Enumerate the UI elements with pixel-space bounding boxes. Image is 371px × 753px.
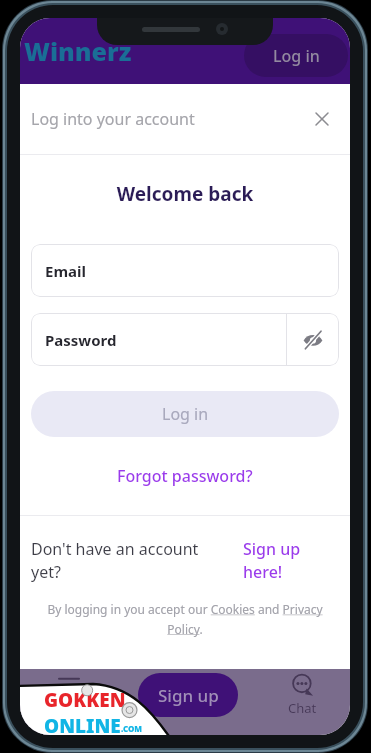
button[interactable]: Sign up [138,673,238,717]
staticText: GOKKEN [44,687,126,713]
button[interactable]: Email [31,244,339,297]
staticText: Chat [288,699,317,717]
button[interactable]: Show password [287,313,339,366]
button[interactable]: Log in [31,391,339,437]
button[interactable]: Forgot password? [20,456,350,496]
staticText: Email [45,261,86,281]
staticText: .COM [121,723,143,734]
staticText: Menu [51,696,87,714]
staticText: Winnerz [24,34,132,68]
staticText: Sign up here! [243,538,339,583]
staticText: Password [45,330,117,350]
staticText: Log into your account [31,108,195,130]
staticText: By logging in you accept our Cookies and… [44,601,326,637]
button[interactable]: Close [306,103,338,135]
button[interactable]: Password [31,313,339,366]
button[interactable]: Chat [273,674,331,735]
staticText: Forgot password? [117,465,253,487]
button[interactable]: Sign up here! [243,538,339,583]
button[interactable]: Log in [244,34,348,77]
staticText: Log in [162,403,209,425]
staticText: Sign up [158,684,219,707]
staticText: ONLINE [44,713,121,735]
button[interactable]: Menu [40,674,98,735]
staticText: Don't have an account yet? [31,538,219,583]
staticText: Welcome back [20,181,350,207]
staticText: Log in [273,45,320,67]
